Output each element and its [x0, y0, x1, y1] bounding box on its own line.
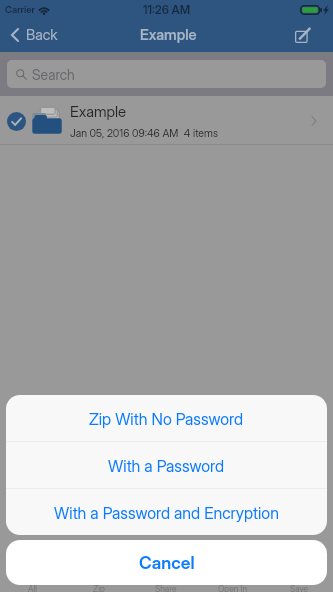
staticText: Example	[140, 26, 197, 44]
staticText: 11:26 AM	[143, 3, 191, 17]
staticText: Zip With No Password	[89, 409, 244, 428]
staticText: Jan 05, 2016 09:46 AM 4 items	[70, 127, 218, 140]
button[interactable]: Back	[11, 26, 58, 44]
staticText: Example	[70, 102, 127, 120]
button[interactable]: Zip	[66, 584, 132, 592]
staticText: Save	[290, 584, 309, 592]
button[interactable]: Compose	[289, 22, 315, 48]
staticText: Search	[32, 66, 75, 83]
staticText: Open In	[218, 584, 248, 592]
button[interactable]: Open In	[199, 584, 266, 592]
staticText: Cancel	[139, 552, 195, 573]
button[interactable]: Example	[0, 96, 333, 145]
button[interactable]: Cancel	[6, 540, 327, 585]
staticText: Back	[26, 26, 58, 44]
staticText: Share	[155, 584, 177, 592]
button[interactable]: Save	[266, 584, 333, 592]
staticText: Zip	[93, 584, 105, 592]
button[interactable]: With a Password	[6, 442, 327, 488]
button[interactable]: Zip With No Password	[6, 395, 327, 441]
staticText: Carrier	[5, 4, 36, 16]
button[interactable]: Share	[132, 584, 199, 592]
staticText: With a Password and Encryption	[54, 503, 279, 522]
button[interactable]: Search	[7, 60, 326, 88]
staticText: With a Password	[108, 456, 225, 475]
button[interactable]: All	[0, 584, 66, 592]
staticText: All	[28, 584, 38, 592]
button[interactable]: With a Password and Encryption	[6, 489, 327, 535]
